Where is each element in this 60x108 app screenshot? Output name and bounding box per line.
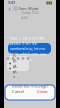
staticText: Sam Wyatt: [19, 6, 38, 11]
staticText: 9:41: [8, 0, 15, 5]
button[interactable]: Back: [7, 5, 12, 12]
staticText: Delete this message?: [11, 83, 48, 89]
button[interactable]: Delete: [7, 66, 29, 71]
staticText: Cancel: [12, 89, 24, 94]
staticText: ▮▮▮: [46, 0, 52, 5]
staticText: Delete: [36, 89, 47, 94]
button[interactable]: Reply: [7, 61, 29, 66]
staticText: Delete: [13, 58, 17, 79]
button[interactable]: Cancel: [6, 89, 30, 94]
staticText: Today 9:41 AM: [21, 10, 39, 20]
staticText: ‹: [8, 4, 10, 13]
staticText: Hey — here are the photos from the weeke…: [10, 35, 46, 62]
button[interactable]: Delete: [30, 89, 54, 94]
staticText: Reply: [13, 53, 17, 74]
